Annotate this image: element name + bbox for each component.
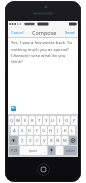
button[interactable]: Backspace xyxy=(69,136,77,145)
staticText: Compose xyxy=(32,29,57,36)
button[interactable]: F xyxy=(34,126,40,135)
staticText: P xyxy=(73,118,76,124)
staticText: K xyxy=(64,128,67,134)
staticText: Send xyxy=(65,30,75,35)
button[interactable]: Shift xyxy=(9,136,18,145)
button[interactable]: I xyxy=(57,116,63,125)
button[interactable]: X xyxy=(27,136,33,145)
staticText: .?123 xyxy=(10,149,18,153)
staticText: M xyxy=(63,138,67,144)
button[interactable]: Y xyxy=(43,116,49,125)
button[interactable]: . xyxy=(56,146,63,155)
button[interactable]: L xyxy=(69,126,75,135)
button[interactable]: K xyxy=(62,126,68,135)
staticText: F xyxy=(36,128,39,134)
staticText: Cancel xyxy=(11,30,24,35)
button[interactable]: B xyxy=(48,136,54,145)
staticText: D xyxy=(28,128,32,134)
staticText: O xyxy=(65,118,69,124)
staticText: T xyxy=(38,118,41,124)
button[interactable]: M xyxy=(62,136,68,145)
staticText: A xyxy=(13,128,16,134)
staticText: . xyxy=(59,149,60,153)
button[interactable]: Z xyxy=(19,136,26,145)
staticText: J xyxy=(57,128,59,134)
staticText: I xyxy=(59,118,61,124)
button[interactable]: D xyxy=(27,126,33,135)
button[interactable]: J xyxy=(55,126,61,135)
staticText: H xyxy=(49,128,53,134)
staticText: N xyxy=(56,138,60,144)
button[interactable]: Dictate xyxy=(48,146,55,155)
button[interactable]: U xyxy=(50,116,56,125)
button[interactable]: E xyxy=(22,116,28,125)
button[interactable]: R xyxy=(29,116,35,125)
staticText: G xyxy=(42,128,46,134)
button[interactable]: S xyxy=(19,126,26,135)
staticText: E xyxy=(24,118,27,124)
button[interactable]: .?123 xyxy=(9,146,19,155)
staticText: C xyxy=(36,138,39,144)
button[interactable]: Yes, I saw a few weeks back. So nothing … xyxy=(8,38,78,114)
staticText: L xyxy=(71,128,74,134)
staticText: Yes, I saw a few weeks back. So nothing … xyxy=(11,40,75,64)
button[interactable]: return xyxy=(64,146,77,155)
staticText: Y xyxy=(45,118,48,124)
staticText: B xyxy=(50,138,53,144)
staticText: V xyxy=(43,138,46,144)
button[interactable]: Home xyxy=(37,163,50,176)
button[interactable]: P xyxy=(71,116,77,125)
staticText: R xyxy=(31,118,34,124)
button[interactable]: T xyxy=(36,116,42,125)
staticText: Q xyxy=(10,118,14,124)
staticText: X xyxy=(29,138,32,144)
button[interactable]: W xyxy=(15,116,21,125)
button[interactable]: O xyxy=(64,116,70,125)
button[interactable]: G xyxy=(41,126,47,135)
button[interactable]: H xyxy=(48,126,54,135)
button[interactable]: Space xyxy=(20,146,47,155)
staticText: S xyxy=(21,128,24,134)
button[interactable]: Attachment xyxy=(11,106,16,111)
button[interactable]: Q xyxy=(9,116,14,125)
button[interactable]: C xyxy=(34,136,40,145)
button[interactable]: V xyxy=(41,136,47,145)
staticText: U xyxy=(51,118,55,124)
button[interactable]: Send xyxy=(64,29,76,36)
staticText: return xyxy=(66,149,75,153)
button[interactable]: Cancel xyxy=(10,29,25,36)
staticText: space xyxy=(29,149,38,153)
staticText: Z xyxy=(21,138,24,144)
staticText: W xyxy=(16,118,20,124)
button[interactable]: N xyxy=(55,136,61,145)
button[interactable]: A xyxy=(11,126,18,135)
